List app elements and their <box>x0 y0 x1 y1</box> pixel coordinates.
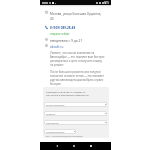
staticText: Разойдите наличие и стоимость запчастей … <box>46 90 89 97</box>
staticText: 8 (909) 089-28-48 <box>50 26 76 30</box>
staticText: ежедневно с 9 до 21 <box>50 38 83 42</box>
button[interactable]: Back <box>54 143 60 149</box>
button[interactable]: akvalit.ru <box>50 45 64 49</box>
staticText: Поколение <box>46 121 59 124</box>
button[interactable]: Марка машины <box>44 102 107 107</box>
staticText: Марка машины <box>46 103 65 106</box>
staticText: akvalit.ru <box>50 45 64 49</box>
staticText: 87% <box>104 1 110 5</box>
staticText: После большого ремонта или покупки запча… <box>50 70 104 86</box>
staticText: Москва, улица Большая Ордынка, <box>50 12 102 16</box>
staticText: Специализация <box>46 130 65 133</box>
staticText: Укажите, что нашли компанию на Автокадаб… <box>50 51 105 67</box>
button[interactable]: 8 (909) 089-28-48 <box>50 26 76 30</box>
button[interactable]: Home <box>71 143 77 149</box>
staticText: Модель <box>46 112 56 115</box>
staticText: Все — актуальные данные магазинов <box>46 135 83 138</box>
button[interactable]: Поколение <box>44 120 107 125</box>
button[interactable]: Модель <box>44 111 107 116</box>
button[interactable]: Специализация <box>44 129 76 134</box>
staticText: открыто сейчас <box>50 32 70 36</box>
button[interactable]: Recent apps <box>88 143 94 149</box>
staticText: 40 <box>50 17 54 21</box>
